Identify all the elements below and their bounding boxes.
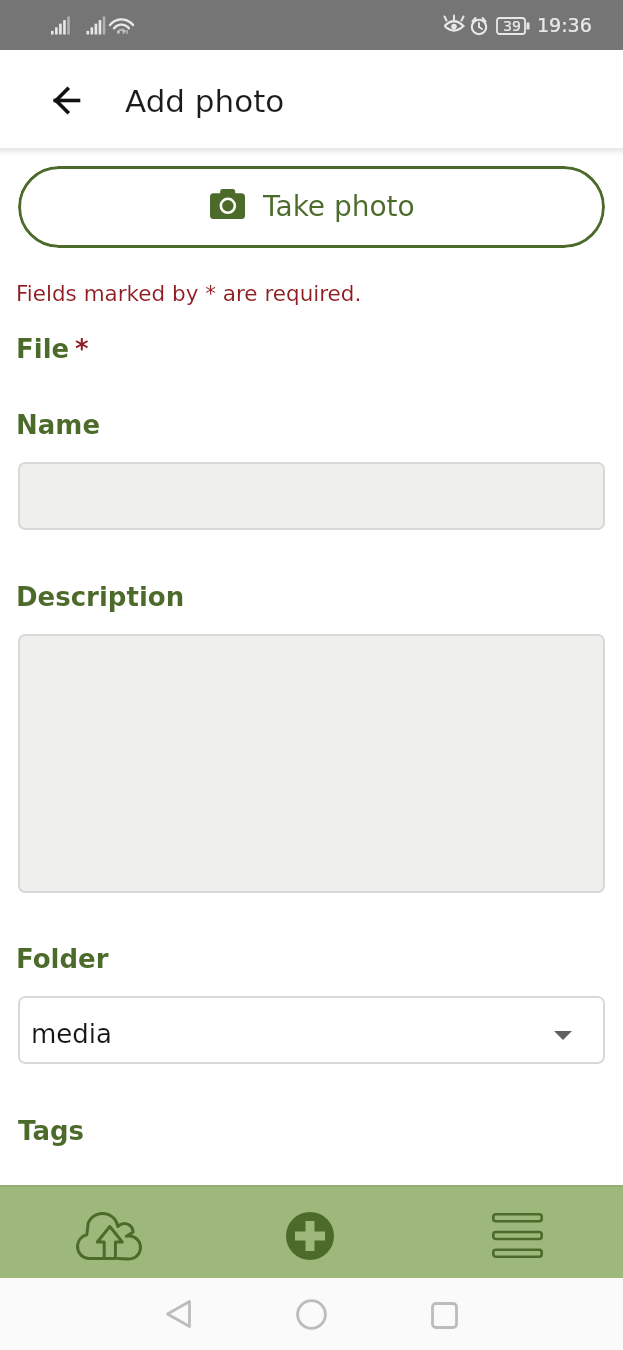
button[interactable]: Upload (52, 1195, 174, 1278)
staticText: Take photo (263, 190, 415, 223)
staticText: Folder (16, 944, 109, 974)
staticText: media (31, 1019, 112, 1049)
button[interactable] (18, 462, 605, 530)
button[interactable] (18, 634, 605, 893)
staticText: 19:36 (537, 14, 592, 36)
staticText: 39 (503, 18, 521, 34)
button[interactable]: Add (250, 1195, 372, 1278)
button[interactable]: Take photo (18, 166, 605, 248)
staticText: Name (16, 410, 101, 440)
staticText: File (16, 334, 70, 364)
staticText: * (75, 334, 89, 364)
button[interactable]: Recents (399, 1282, 489, 1348)
staticText: Description (16, 582, 185, 612)
button[interactable]: Menu (457, 1195, 579, 1278)
button[interactable]: Back (30, 65, 102, 135)
staticText: Add photo (125, 83, 285, 119)
staticText: Fields marked by * are required. (16, 281, 362, 306)
button[interactable]: Home (266, 1281, 356, 1347)
button[interactable]: Back (133, 1281, 223, 1347)
button[interactable]: media (18, 996, 605, 1064)
staticText: Tags (18, 1116, 85, 1146)
